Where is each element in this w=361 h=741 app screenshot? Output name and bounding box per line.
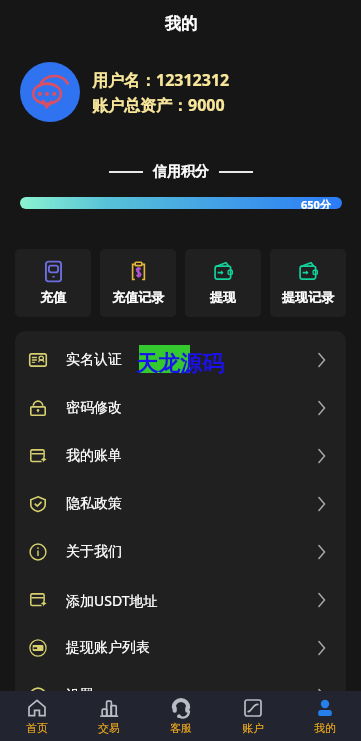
- staticText: 客服: [170, 721, 192, 735]
- staticText: 隐私政策: [66, 495, 122, 513]
- staticText: 充值记录: [112, 289, 164, 305]
- staticText: 首页: [26, 721, 48, 735]
- staticText: 天龙源码: [136, 350, 224, 378]
- staticText: 账户: [242, 721, 264, 735]
- staticText: 账户总资产：9000: [92, 94, 225, 116]
- button[interactable]: 充值: [15, 249, 91, 317]
- button[interactable]: 我的: [289, 691, 361, 741]
- button[interactable]: 添加USDT地址: [15, 576, 346, 624]
- staticText: 提现记录: [282, 289, 334, 305]
- staticText: 实名认证: [66, 351, 122, 369]
- staticText: 充值: [40, 289, 66, 305]
- button[interactable]: 充值记录: [100, 249, 176, 317]
- staticText: 交易: [98, 721, 120, 735]
- staticText: 信用积分: [153, 163, 209, 181]
- button[interactable]: 客服: [145, 691, 217, 741]
- staticText: 我的: [165, 14, 197, 34]
- button[interactable]: 我的账单: [15, 432, 346, 480]
- button[interactable]: 首页: [0, 691, 73, 741]
- button[interactable]: 实名认证: [15, 336, 346, 384]
- staticText: 设置: [66, 687, 94, 705]
- button[interactable]: 提现账户列表: [15, 624, 346, 672]
- staticText: 添加USDT地址: [66, 591, 158, 610]
- staticText: 关于我们: [66, 543, 122, 561]
- staticText: 提现账户列表: [66, 639, 150, 657]
- button[interactable]: 提现记录: [270, 249, 346, 317]
- button[interactable]: 关于我们: [15, 528, 346, 576]
- button[interactable]: 交易: [73, 691, 145, 741]
- staticText: 密码修改: [66, 399, 122, 417]
- button[interactable]: 隐私政策: [15, 480, 346, 528]
- staticText: 我的: [314, 721, 336, 735]
- button[interactable]: 设置: [15, 672, 346, 720]
- staticText: 我的账单: [66, 447, 122, 465]
- staticText: 提现: [210, 289, 236, 305]
- button[interactable]: 密码修改: [15, 384, 346, 432]
- staticText: 用户名：12312312: [92, 69, 230, 91]
- button[interactable]: 提现: [185, 249, 261, 317]
- staticText: 650分: [301, 197, 331, 209]
- button[interactable]: 账户: [217, 691, 289, 741]
